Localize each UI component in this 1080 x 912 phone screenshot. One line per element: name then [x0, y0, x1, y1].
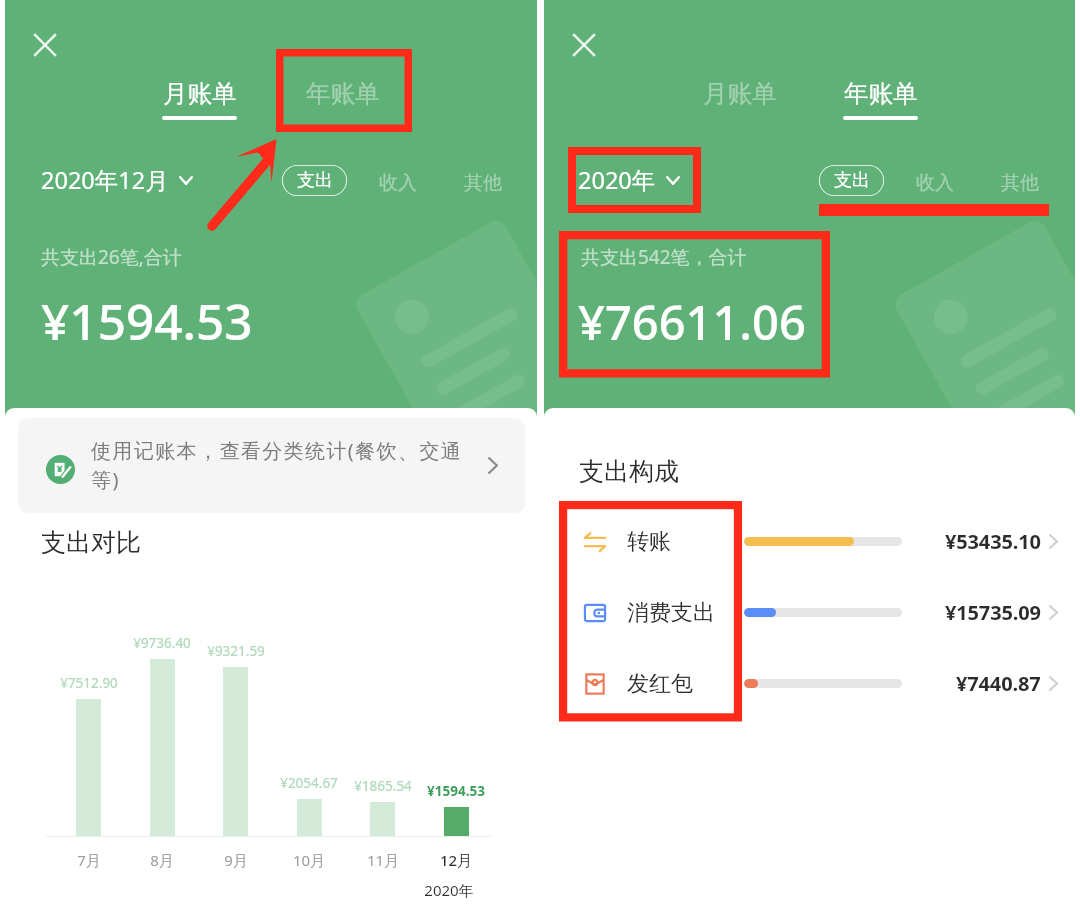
staticText: 月账单 — [163, 78, 237, 109]
button[interactable]: 其他 — [464, 171, 502, 195]
button[interactable]: 转账 — [544, 506, 1075, 577]
staticText: ¥7512.90 — [43, 674, 135, 692]
button[interactable]: 2020年 — [578, 164, 680, 196]
staticText: ¥53435.10 — [945, 528, 1041, 555]
staticText: 10月 — [263, 850, 355, 870]
button[interactable]: 支出 — [282, 165, 347, 196]
staticText: 9月 — [190, 850, 282, 870]
staticText: 2020年12月 — [41, 164, 169, 196]
staticText: ¥15735.09 — [945, 599, 1041, 626]
button[interactable]: 收入 — [379, 171, 417, 195]
staticText: 其他 — [464, 171, 502, 195]
staticText: 年账单 — [306, 78, 380, 109]
staticText: 支出 — [297, 169, 333, 192]
staticText: 发红包 — [627, 670, 744, 698]
button[interactable]: 年账单 — [843, 78, 918, 120]
staticText: 支出对比 — [41, 527, 141, 558]
button[interactable]: 月账单 — [703, 78, 777, 109]
staticText: 支出 — [834, 169, 870, 192]
staticText: 年账单 — [844, 78, 918, 109]
staticText: 12月 — [410, 850, 502, 870]
staticText: 消费支出 — [627, 599, 744, 627]
button[interactable]: 年账单 — [306, 78, 380, 109]
staticText: 8月 — [116, 850, 208, 870]
staticText: 其他 — [1001, 171, 1039, 195]
button[interactable]: Close — [25, 25, 65, 65]
staticText: ¥1865.54 — [337, 777, 429, 795]
staticText: 月账单 — [703, 78, 777, 109]
staticText: 收入 — [379, 171, 417, 195]
staticText: ¥9321.59 — [190, 642, 282, 660]
button[interactable]: 使用记账本，查看分类统计(餐饮、交通 等) — [18, 418, 525, 513]
button[interactable]: 2020年12月 — [41, 164, 193, 196]
button[interactable]: 收入 — [916, 171, 954, 195]
staticText: 收入 — [916, 171, 954, 195]
staticText: 使用记账本，查看分类统计(餐饮、交通 等) — [91, 437, 463, 493]
button[interactable]: 其他 — [1001, 171, 1039, 195]
staticText: 共支出26笔,合计 — [41, 244, 182, 270]
staticText: 2020年 — [578, 164, 656, 196]
staticText: ¥1594.53 — [410, 782, 502, 800]
button[interactable]: Close — [564, 25, 604, 65]
staticText: 7月 — [43, 850, 135, 870]
button[interactable]: 支出 — [819, 165, 884, 196]
staticText: ¥76611.06 — [578, 290, 806, 354]
staticText: 支出构成 — [579, 456, 679, 487]
button[interactable]: 消费支出 — [544, 577, 1075, 648]
staticText: 11月 — [337, 850, 429, 870]
staticText: 共支出542笔，合计 — [581, 244, 747, 270]
button[interactable]: 月账单 — [162, 78, 237, 120]
staticText: ¥2054.67 — [263, 774, 355, 792]
staticText: ¥9736.40 — [116, 634, 208, 652]
staticText: ¥1594.53 — [41, 287, 253, 354]
staticText: 转账 — [627, 528, 744, 556]
staticText: 2020年 — [403, 880, 495, 900]
button[interactable]: 发红包 — [544, 648, 1075, 719]
staticText: ¥7440.87 — [956, 670, 1041, 697]
